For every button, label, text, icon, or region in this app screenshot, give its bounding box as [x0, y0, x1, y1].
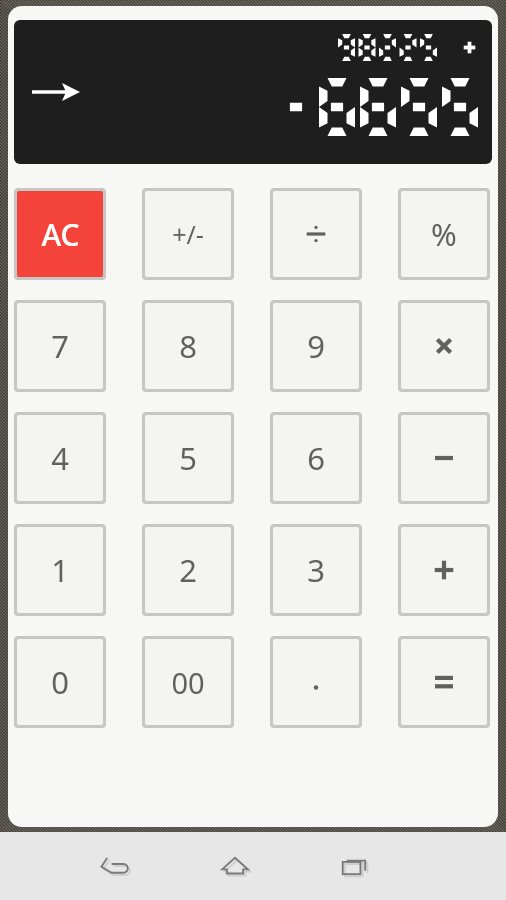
staticText: 8 — [179, 325, 197, 367]
button[interactable]: AC — [14, 188, 106, 280]
staticText: 5 — [179, 437, 197, 479]
button[interactable] — [270, 188, 362, 280]
staticText: AC — [41, 214, 80, 255]
button[interactable] — [270, 636, 362, 728]
button[interactable]: 3 — [270, 524, 362, 616]
button[interactable]: 4 — [14, 412, 106, 504]
button[interactable] — [398, 300, 490, 392]
button[interactable] — [398, 636, 490, 728]
staticText: 00 — [171, 663, 205, 702]
button[interactable]: 9 — [270, 300, 362, 392]
button[interactable]: 5 — [142, 412, 234, 504]
button[interactable]: 7 — [14, 300, 106, 392]
staticText: 9 — [307, 325, 325, 367]
button[interactable]: 0 — [14, 636, 106, 728]
button[interactable] — [398, 524, 490, 616]
staticText: 7 — [51, 325, 69, 367]
staticText: % — [431, 213, 457, 255]
staticText: 2 — [179, 549, 197, 591]
button[interactable]: Home — [175, 832, 295, 900]
button[interactable]: Back — [55, 832, 175, 900]
button[interactable]: 1 — [14, 524, 106, 616]
button[interactable]: % — [398, 188, 490, 280]
staticText: 6 — [307, 437, 325, 479]
staticText: +/- — [172, 217, 204, 251]
button[interactable]: 2 — [142, 524, 234, 616]
button[interactable]: Recent apps — [295, 832, 415, 900]
button[interactable]: 6 — [270, 412, 362, 504]
button[interactable]: 8 — [142, 300, 234, 392]
staticText: 3 — [307, 549, 325, 591]
button[interactable] — [398, 412, 490, 504]
staticText: 1 — [51, 549, 69, 591]
staticText: 4 — [51, 437, 69, 479]
staticText: 0 — [51, 661, 69, 703]
button[interactable]: +/- — [142, 188, 234, 280]
button[interactable]: 00 — [142, 636, 234, 728]
